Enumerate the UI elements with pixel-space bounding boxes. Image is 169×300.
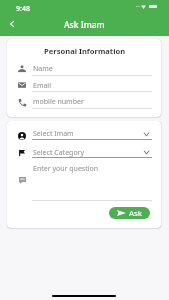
staticText: Ask (129, 208, 142, 219)
staticText: Name (33, 64, 53, 74)
button[interactable] (7, 125, 161, 143)
staticText: Personal Information (44, 46, 126, 56)
button[interactable] (7, 161, 161, 203)
staticText: Select Imam (33, 129, 74, 139)
staticText: mobile number (33, 97, 84, 107)
button[interactable] (7, 61, 161, 77)
staticText: Ask Imam (64, 19, 105, 31)
staticText: Enter your question (33, 164, 99, 174)
staticText: Email (33, 81, 51, 91)
button[interactable]: Ask (109, 207, 150, 219)
button[interactable]: Back (4, 16, 19, 31)
button[interactable] (7, 143, 161, 161)
button[interactable] (7, 94, 161, 110)
button[interactable] (7, 77, 161, 93)
staticText: 9:48 (16, 4, 30, 14)
staticText: Select Category (33, 148, 85, 158)
